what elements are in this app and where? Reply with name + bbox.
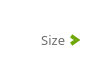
staticText: Size xyxy=(41,31,65,49)
button[interactable]: Size xyxy=(0,27,87,53)
other: Open size options xyxy=(70,34,79,46)
